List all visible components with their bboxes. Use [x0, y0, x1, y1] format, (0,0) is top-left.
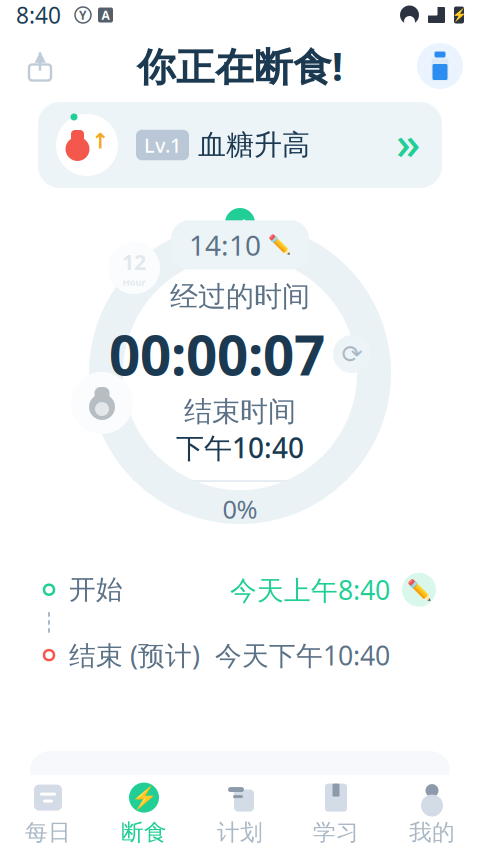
staticText: ⚡ — [130, 785, 157, 810]
staticText: 断食 — [121, 819, 167, 846]
staticText: 12 — [122, 248, 146, 276]
button[interactable]: 学习 — [288, 775, 384, 853]
button[interactable]: 喝水 — [414, 40, 466, 92]
button[interactable]: 14:10 — [171, 220, 309, 269]
button[interactable]: 我的 — [384, 775, 480, 853]
button[interactable]: 重置 — [333, 335, 371, 373]
staticText: 开始 — [69, 573, 123, 606]
staticText: → — [231, 211, 249, 235]
staticText: 学习 — [313, 819, 359, 846]
staticText: » — [396, 112, 420, 172]
staticText: Lv.1 — [144, 132, 181, 158]
staticText: 下午10:40 — [176, 429, 304, 466]
staticText: 8:40 — [16, 0, 61, 30]
staticText: 计划 — [217, 819, 263, 846]
staticText: Hour — [122, 276, 145, 288]
staticText: A — [101, 7, 109, 23]
staticText: ↑ — [91, 129, 109, 153]
button[interactable]: ⚡ — [96, 775, 192, 853]
staticText: ⚡ — [451, 8, 466, 22]
staticText: 0% — [222, 492, 257, 526]
staticText: 每日 — [25, 819, 71, 846]
staticText: ✏️ — [406, 578, 431, 601]
staticText: 00:00:07 — [109, 318, 325, 390]
button[interactable]: ↑ — [0, 102, 480, 188]
button[interactable]: 计划 — [192, 775, 288, 853]
button[interactable]: 编辑开始时间 — [390, 573, 436, 607]
staticText: 今天上午8:40 — [230, 572, 390, 607]
staticText: 结束时间 — [184, 394, 296, 429]
staticText: Y — [79, 7, 87, 23]
staticText: 我的 — [409, 819, 455, 846]
staticText: 经过的时间 — [170, 279, 310, 314]
staticText: ⟳ — [341, 340, 362, 369]
staticText: 结束 (预计) — [69, 637, 200, 673]
staticText: 14:10 — [189, 226, 261, 263]
staticText: 今天下午10:40 — [215, 637, 390, 673]
staticText: ✏️ — [268, 234, 291, 255]
button[interactable]: 每日 — [0, 775, 96, 853]
staticText: 你正在断食! — [137, 40, 343, 92]
staticText: 血糖升高 — [198, 128, 310, 162]
button[interactable]: 分享 — [14, 40, 66, 92]
staticText: ▲ — [34, 48, 45, 64]
